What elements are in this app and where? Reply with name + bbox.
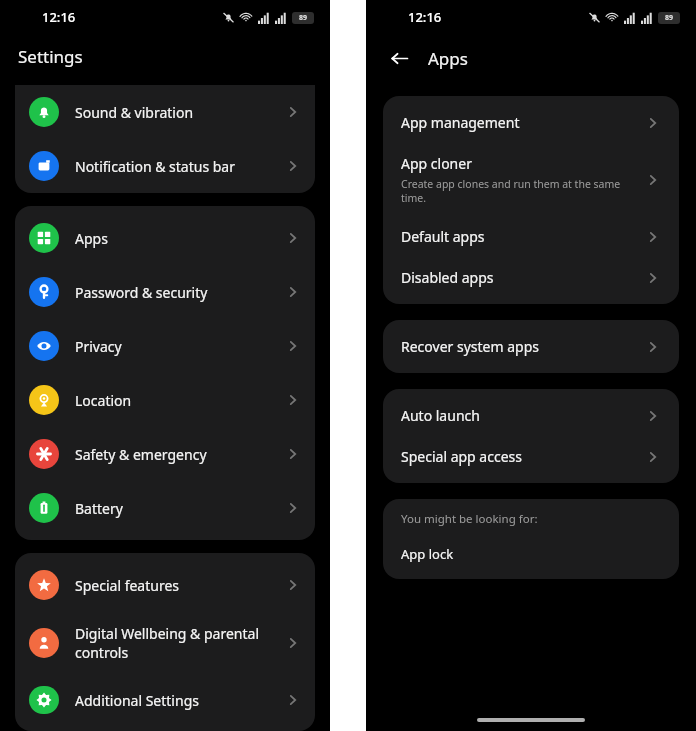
staticText: App lock bbox=[401, 545, 454, 563]
staticText: Battery bbox=[75, 499, 285, 518]
button[interactable]: Location bbox=[15, 373, 315, 427]
button[interactable]: Recover system apps bbox=[383, 326, 679, 367]
button[interactable]: Auto launch bbox=[383, 395, 679, 436]
staticText: 89 bbox=[299, 13, 308, 23]
button[interactable]: Sound & vibration bbox=[15, 85, 315, 139]
button[interactable]: Safety & emergency bbox=[15, 427, 315, 481]
button[interactable]: Back bbox=[386, 45, 412, 71]
button[interactable]: Notification & status bar bbox=[15, 139, 315, 193]
button[interactable]: Default apps bbox=[383, 216, 679, 257]
staticText: Safety & emergency bbox=[75, 445, 285, 464]
staticText: Recover system apps bbox=[401, 337, 539, 356]
button[interactable]: Additional Settings bbox=[15, 674, 315, 726]
button[interactable]: Apps bbox=[15, 211, 315, 265]
staticText: Password & security bbox=[75, 283, 285, 302]
staticText: Disabled apps bbox=[401, 268, 494, 287]
staticText: App cloner bbox=[401, 154, 472, 173]
staticText: Default apps bbox=[401, 227, 485, 246]
staticText: 12:16 bbox=[408, 8, 442, 26]
staticText: Additional Settings bbox=[75, 691, 285, 710]
staticText: Create app clones and run them at the sa… bbox=[401, 177, 637, 205]
staticText: Notification & status bar bbox=[75, 157, 285, 176]
button[interactable]: Privacy bbox=[15, 319, 315, 373]
staticText: Apps bbox=[428, 47, 468, 70]
staticText: Settings bbox=[18, 45, 83, 68]
staticText: App management bbox=[401, 113, 520, 132]
staticText: Location bbox=[75, 391, 285, 410]
staticText: Digital Wellbeing & parental controls bbox=[75, 624, 285, 662]
staticText: 12:16 bbox=[42, 8, 76, 26]
button[interactable]: Battery bbox=[15, 481, 315, 535]
button[interactable]: Disabled apps bbox=[383, 257, 679, 298]
button[interactable]: App cloner bbox=[383, 143, 679, 216]
staticText: Apps bbox=[75, 229, 285, 248]
staticText: Special app access bbox=[401, 447, 522, 466]
button[interactable]: Special app access bbox=[383, 436, 679, 477]
button[interactable]: Digital Wellbeing & parental controls bbox=[15, 612, 315, 674]
staticText: You might be looking for: bbox=[401, 511, 538, 527]
button[interactable]: App lock bbox=[383, 541, 679, 567]
staticText: 89 bbox=[665, 13, 674, 23]
staticText: Privacy bbox=[75, 337, 285, 356]
button[interactable]: Password & security bbox=[15, 265, 315, 319]
staticText: Auto launch bbox=[401, 406, 480, 425]
button[interactable]: Special features bbox=[15, 558, 315, 612]
staticText: Special features bbox=[75, 576, 285, 595]
staticText: Sound & vibration bbox=[75, 103, 285, 122]
button[interactable]: App management bbox=[383, 102, 679, 143]
